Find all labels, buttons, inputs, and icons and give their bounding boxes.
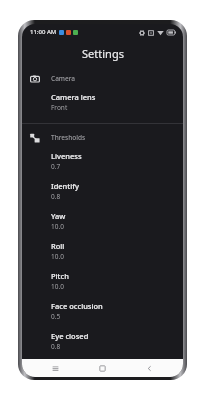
staticText: Face occlusion: [51, 301, 103, 311]
staticText: 0.8: [51, 342, 61, 351]
button[interactable]: Back: [126, 359, 173, 377]
button[interactable]: Liveness: [22, 146, 183, 176]
staticText: Camera lens: [51, 92, 96, 102]
staticText: 0.7: [51, 162, 61, 171]
button[interactable]: Roll: [22, 236, 183, 266]
button[interactable]: Yaw: [22, 206, 183, 236]
staticText: Pitch: [51, 271, 69, 281]
staticText: 0.5: [51, 312, 61, 321]
button[interactable]: Home: [79, 359, 126, 377]
staticText: Identify: [51, 181, 79, 191]
button[interactable]: Pitch: [22, 266, 183, 296]
staticText: 10.0: [51, 252, 64, 261]
button[interactable]: Identify: [22, 176, 183, 206]
staticText: Thresholds: [51, 133, 86, 142]
button[interactable]: Eye closed: [22, 326, 183, 356]
staticText: Roll: [51, 241, 65, 251]
staticText: 11:00 AM: [30, 28, 57, 36]
button[interactable]: Face occlusion: [22, 296, 183, 326]
staticText: Eye closed: [51, 331, 89, 341]
staticText: 10.0: [51, 282, 64, 291]
staticText: Settings: [82, 46, 124, 61]
staticText: Yaw: [51, 211, 66, 221]
button[interactable]: Recent apps: [32, 359, 79, 377]
staticText: 10.0: [51, 222, 64, 231]
staticText: Camera: [51, 74, 76, 83]
staticText: Liveness: [51, 151, 82, 161]
button[interactable]: Camera lens: [22, 87, 183, 117]
staticText: 0.8: [51, 192, 61, 201]
staticText: Front: [51, 103, 68, 112]
